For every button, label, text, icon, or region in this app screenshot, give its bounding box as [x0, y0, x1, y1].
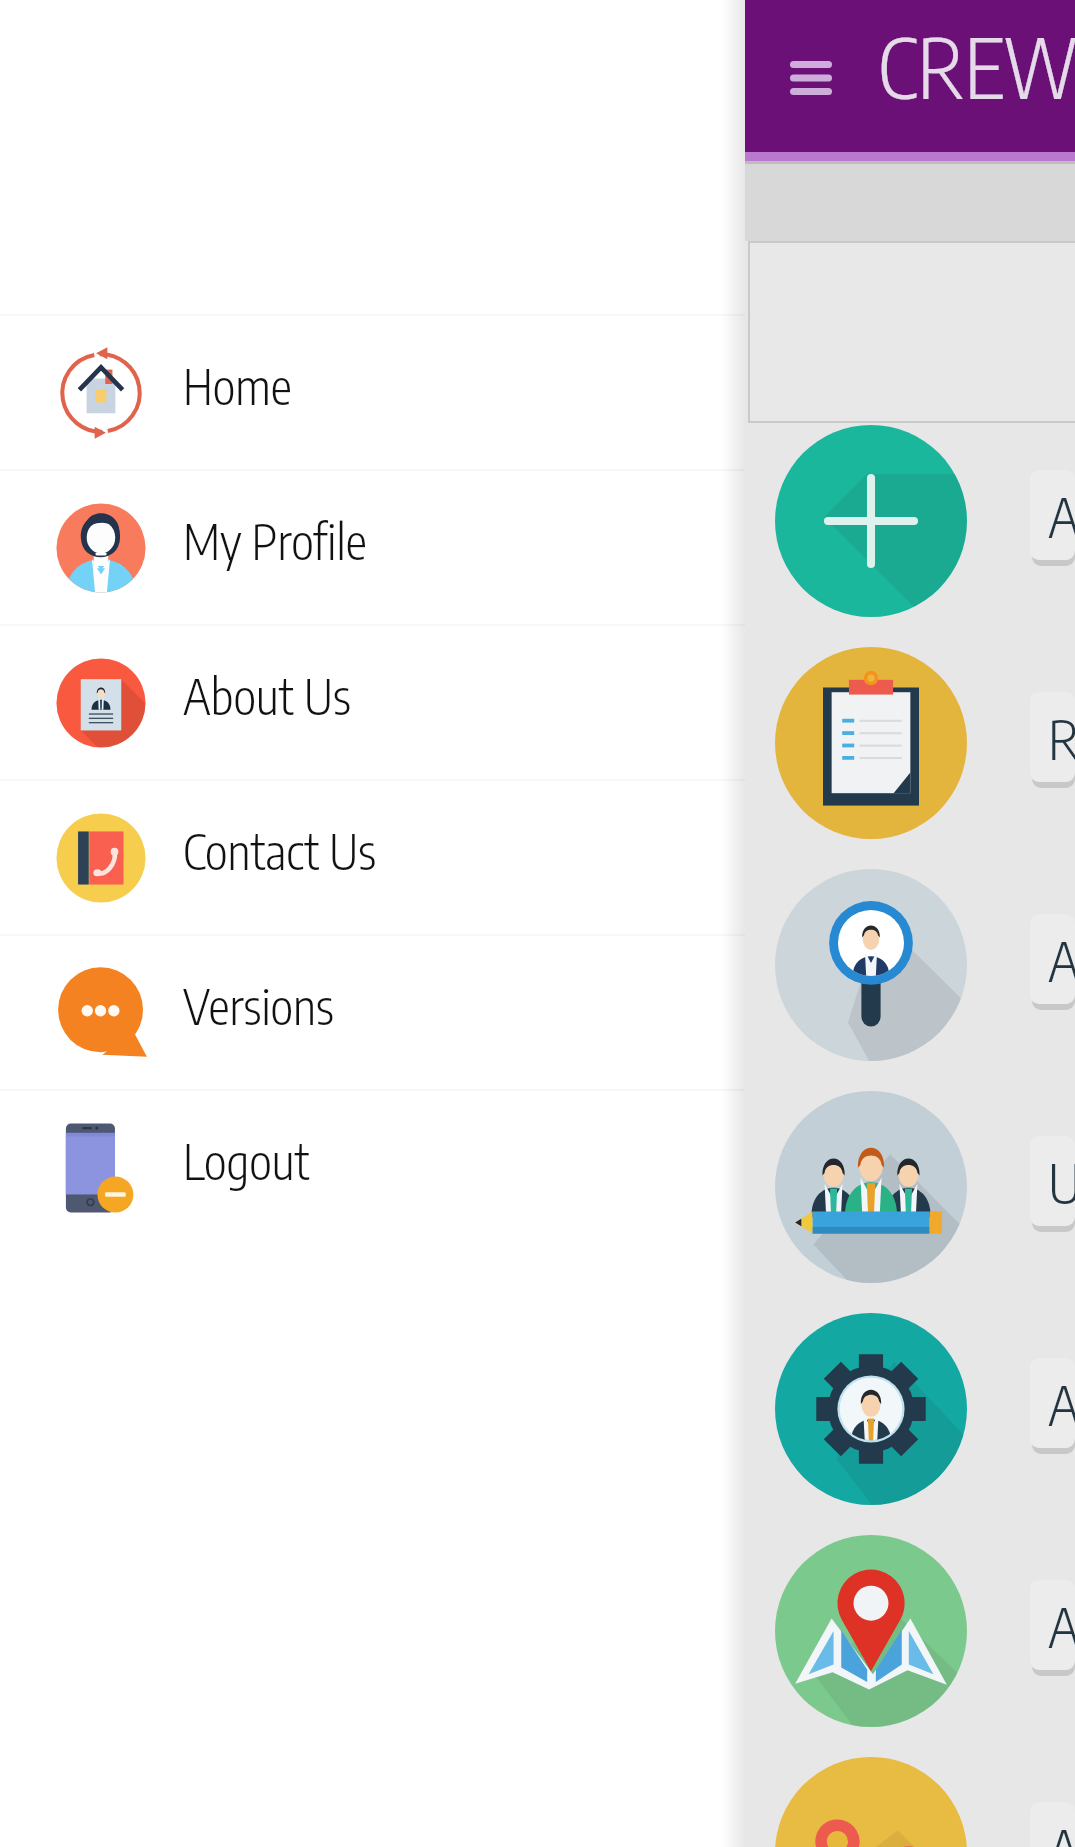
staticText: A: [1048, 481, 1075, 550]
button[interactable]: Logout: [0, 1091, 745, 1244]
button[interactable]: About Us: [0, 626, 745, 779]
staticText: About Us: [183, 666, 351, 726]
staticText: U: [1048, 1147, 1075, 1216]
staticText: Logout: [183, 1131, 310, 1191]
button[interactable]: Open navigation drawer: [780, 49, 842, 107]
staticText: A: [1048, 1369, 1075, 1438]
staticText: Versions: [183, 976, 334, 1036]
button[interactable]: A: [745, 1533, 1075, 1755]
staticText: My Profile: [183, 511, 367, 571]
button[interactable]: Home: [0, 316, 745, 469]
button[interactable]: A: [745, 423, 1075, 645]
staticText: A: [1048, 925, 1075, 994]
button[interactable]: A: [745, 1755, 1075, 1847]
button[interactable]: Versions: [0, 936, 745, 1089]
button[interactable]: U: [745, 1089, 1075, 1311]
button[interactable]: A: [745, 867, 1075, 1089]
staticText: Contact Us: [183, 821, 377, 881]
staticText: A: [1048, 1813, 1075, 1847]
button[interactable]: My Profile: [0, 471, 745, 624]
button[interactable]: A: [745, 1311, 1075, 1533]
staticText: R: [1048, 703, 1075, 772]
staticText: Home: [183, 356, 292, 416]
button[interactable]: R: [745, 645, 1075, 867]
staticText: A: [1048, 1591, 1075, 1660]
button[interactable]: Contact Us: [0, 781, 745, 934]
staticText: CREW: [878, 15, 1075, 117]
